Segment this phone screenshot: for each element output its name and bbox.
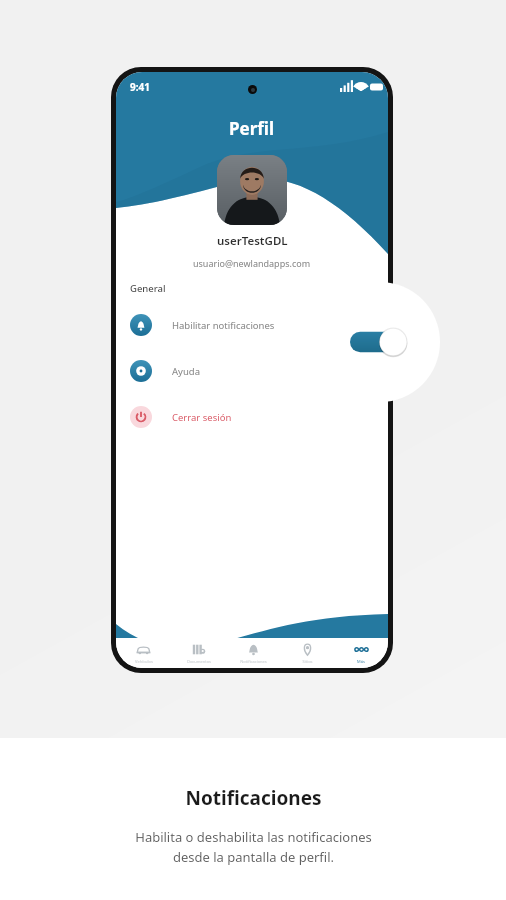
staticText: usuario@newlandapps.com — [193, 257, 311, 269]
staticText: General — [130, 282, 166, 295]
button[interactable]: Notificaciones — [226, 638, 280, 668]
staticText: Ayuda — [172, 365, 200, 378]
button[interactable]: Ayuda — [116, 358, 388, 384]
button[interactable]: Sitios — [280, 638, 334, 668]
staticText: Más — [357, 659, 365, 664]
button[interactable]: Documentos — [171, 638, 226, 668]
staticText: Notificaciones — [240, 659, 267, 664]
button[interactable]: Habilitar notificaciones — [350, 327, 410, 357]
button[interactable]: Vehículos — [116, 638, 171, 668]
button[interactable]: Más — [334, 638, 388, 668]
staticText: Habilitar notificaciones — [172, 319, 275, 332]
staticText: Documentos — [187, 659, 211, 664]
staticText: userTestGDL — [217, 233, 288, 249]
staticText: Vehículos — [135, 659, 153, 664]
staticText: Cerrar sesión — [172, 411, 232, 424]
button[interactable]: Habilitar notificaciones — [116, 312, 388, 338]
staticText: Sitios — [302, 659, 313, 664]
staticText: Perfil — [229, 117, 275, 140]
button[interactable]: Cerrar sesión — [116, 404, 388, 430]
staticText: 9:41 — [130, 80, 150, 94]
staticText: Notificaciones — [185, 785, 322, 811]
staticText: Habilita o deshabilita las notificacione… — [135, 828, 372, 866]
